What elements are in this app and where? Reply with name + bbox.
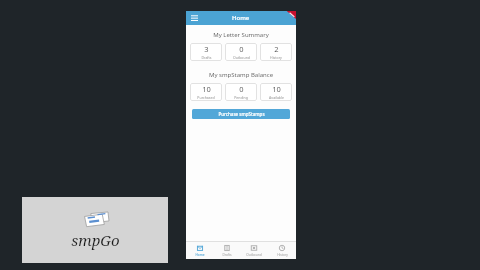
- button[interactable]: Home: [186, 241, 213, 259]
- staticText: History: [277, 253, 288, 257]
- staticText: smpGo: [71, 230, 120, 250]
- staticText: Purchase smpStamps: [218, 111, 265, 117]
- button[interactable]: 10: [190, 83, 222, 101]
- button[interactable]: 10: [260, 83, 292, 101]
- button[interactable]: Open navigation menu: [189, 13, 199, 23]
- button[interactable]: Purchase smpStamps: [192, 109, 290, 119]
- staticText: Drafts: [201, 55, 212, 60]
- staticText: History: [270, 55, 282, 60]
- button[interactable]: History: [268, 241, 296, 259]
- staticText: Home: [195, 253, 205, 257]
- staticText: Drafts: [222, 253, 232, 257]
- staticText: Available: [269, 95, 284, 100]
- button[interactable]: 0: [225, 43, 257, 61]
- staticText: Outbound: [233, 55, 250, 60]
- button[interactable]: 3: [190, 43, 222, 61]
- staticText: Outbound: [246, 253, 262, 257]
- button[interactable]: 2: [260, 43, 292, 61]
- button[interactable]: Outbound: [240, 241, 268, 259]
- button[interactable]: 0: [225, 83, 257, 101]
- staticText: 10: [202, 84, 211, 94]
- button[interactable]: Drafts: [213, 241, 240, 259]
- staticText: Purchased: [197, 95, 215, 100]
- staticText: 0: [239, 84, 244, 94]
- staticText: My smpStamp Balance: [186, 71, 296, 79]
- staticText: Pending: [234, 95, 248, 100]
- staticText: 0: [239, 44, 244, 54]
- staticText: Home: [232, 14, 250, 22]
- staticText: My Letter Summary: [186, 31, 296, 39]
- staticText: 2: [274, 44, 279, 54]
- staticText: 10: [272, 84, 281, 94]
- staticText: 3: [204, 44, 209, 54]
